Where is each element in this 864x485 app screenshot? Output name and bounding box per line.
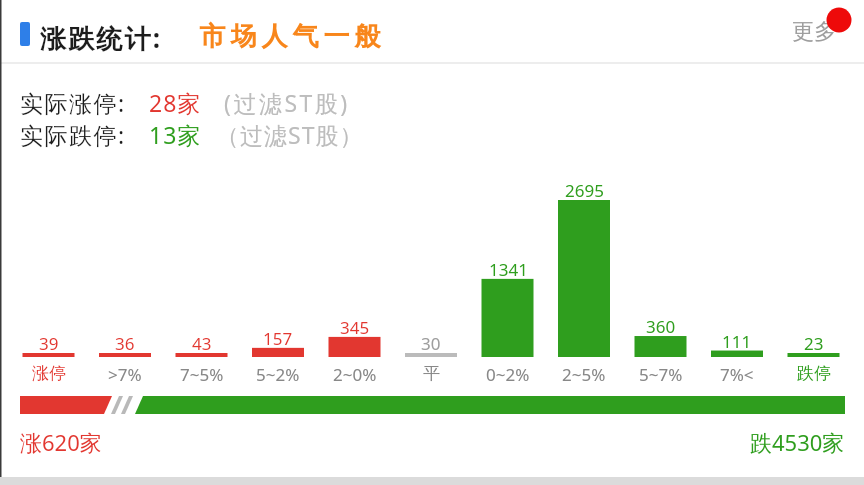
staticText: 36 <box>115 332 135 355</box>
staticText: 111 <box>722 330 752 353</box>
staticText: 7%< <box>720 363 754 386</box>
staticText: 跌停 <box>797 363 831 384</box>
staticText: 28家 <box>149 87 202 118</box>
staticText: >7% <box>108 363 142 386</box>
staticText: 30 <box>421 332 441 355</box>
staticText: 1341 <box>489 258 528 281</box>
staticText: 平 <box>423 363 440 384</box>
staticText: 5~2% <box>256 363 300 386</box>
staticText: 360 <box>646 315 676 338</box>
staticText: 涨跌统计: <box>40 20 163 56</box>
staticText: 涨620家 <box>20 427 102 457</box>
staticText: 5~7% <box>639 363 683 386</box>
staticText: （过滤ST股） <box>216 119 364 150</box>
staticText: 345 <box>340 316 370 339</box>
staticText: 涨停 <box>32 363 66 384</box>
staticText: 39 <box>39 332 59 355</box>
staticText: 更多 <box>792 18 836 46</box>
staticText: 跌4530家 <box>750 427 845 457</box>
staticText: 实际跌停: <box>20 119 126 150</box>
staticText: 市场人气一般 <box>197 20 383 53</box>
staticText: 0~2% <box>486 363 530 386</box>
staticText: 157 <box>263 327 293 350</box>
staticText: 2~5% <box>562 363 606 386</box>
staticText: 23 <box>804 332 824 355</box>
staticText: 2~0% <box>333 363 377 386</box>
button[interactable]: 更多 <box>780 16 850 50</box>
staticText: 43 <box>192 332 212 355</box>
staticText: (过滤ST股) <box>224 87 350 118</box>
staticText: 13家 <box>149 119 202 150</box>
staticText: 7~5% <box>180 363 224 386</box>
staticText: 2695 <box>565 179 604 202</box>
staticText: 实际涨停: <box>20 87 126 118</box>
